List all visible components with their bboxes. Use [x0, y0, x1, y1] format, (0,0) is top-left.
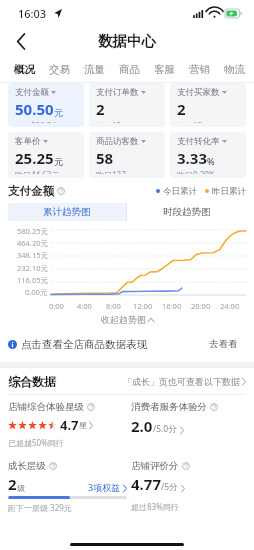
button[interactable]: 物流: [217, 56, 252, 82]
button[interactable]: 累计趋势图: [8, 203, 126, 221]
staticText: 商品访客数: [96, 136, 139, 147]
button[interactable]: 支付买家数: [170, 83, 246, 127]
staticText: 超过83%同行: [131, 501, 179, 512]
button[interactable]: 商品访客数: [89, 132, 165, 178]
staticText: 概况: [14, 63, 35, 76]
staticText: 元: [54, 156, 63, 167]
staticText: 级: [17, 483, 25, 493]
staticText: 流量: [84, 63, 105, 76]
staticText: %: [207, 155, 215, 167]
staticText: 昨日9.29%: [177, 169, 216, 174]
staticText: 3项权益: [88, 481, 121, 493]
staticText: 星: [79, 420, 87, 430]
staticText: 点击查看全店商品数据表现: [21, 338, 147, 351]
staticText: 「成长」页也可查看以下数据: [123, 376, 240, 387]
staticText: 客单价: [15, 136, 41, 147]
staticText: 时段趋势图: [163, 206, 211, 218]
staticText: /5.0分: [153, 423, 177, 435]
staticText: 348.15元: [17, 250, 48, 260]
staticText: 店铺评价分: [131, 460, 179, 472]
staticText: 昨日累计: [212, 186, 246, 197]
staticText: 50.50: [15, 99, 54, 119]
staticText: 2: [8, 474, 17, 494]
staticText: 昨日580.24元: [15, 120, 65, 123]
staticText: 支付订单数: [96, 87, 139, 98]
button[interactable]: 4.77: [131, 474, 185, 494]
staticText: 25.25: [15, 148, 54, 168]
staticText: 464.20元: [17, 238, 48, 248]
button[interactable]: 去看看: [201, 335, 246, 353]
staticText: 物流: [224, 63, 245, 76]
staticText: 8:00: [106, 301, 121, 311]
button[interactable]: 商品: [112, 56, 147, 82]
button[interactable]: 2: [8, 474, 127, 494]
staticText: 昨日137: [96, 169, 126, 174]
button[interactable]: 客服: [147, 56, 182, 82]
staticText: 昨日13: [96, 120, 122, 123]
staticText: 客服: [154, 63, 175, 76]
button[interactable]: 客单价: [8, 132, 84, 178]
staticText: 4:00: [77, 301, 92, 311]
staticText: 支付金额: [8, 184, 54, 198]
staticText: /5分: [161, 481, 178, 493]
staticText: 116.05元: [17, 275, 48, 285]
staticText: 去看看: [209, 338, 238, 350]
button[interactable]: 支付订单数: [89, 83, 165, 127]
button[interactable]: 流量: [77, 56, 112, 82]
staticText: 16:03: [18, 6, 47, 21]
staticText: 消费者服务体验分: [131, 401, 207, 413]
staticText: 昨日13: [177, 120, 203, 123]
staticText: 58: [96, 148, 114, 168]
staticText: 232.10元: [17, 263, 48, 273]
button[interactable]: 2.0: [131, 416, 184, 436]
button[interactable]: 支付金额: [8, 83, 84, 127]
staticText: 24:00: [220, 301, 240, 311]
staticText: 交易: [49, 63, 70, 76]
staticText: 2: [96, 99, 105, 119]
staticText: 支付转化率: [177, 136, 220, 147]
staticText: 商品: [119, 63, 140, 76]
button[interactable]: 4.7: [8, 416, 93, 434]
staticText: 2.0: [131, 416, 153, 436]
staticText: 20:00: [191, 301, 211, 311]
staticText: 12:00: [133, 301, 153, 311]
staticText: 距下一层级 329元: [8, 502, 72, 513]
staticText: 收起趋势图: [101, 314, 146, 325]
button[interactable]: 概况: [6, 56, 42, 82]
staticText: 已超越50%同行: [8, 437, 64, 448]
staticText: 店铺综合体验星级: [8, 401, 84, 413]
staticText: 0:00: [49, 301, 64, 311]
staticText: 3.33: [177, 148, 207, 168]
button[interactable]: 综合数据: [8, 368, 246, 394]
staticText: 支付买家数: [177, 87, 220, 98]
staticText: 营销: [189, 63, 210, 76]
staticText: 4.77: [131, 474, 161, 494]
staticText: 0.00元: [25, 287, 48, 297]
button[interactable]: 营销: [182, 56, 217, 82]
staticText: 元: [54, 107, 63, 118]
staticText: 累计趋势图: [43, 206, 91, 218]
button[interactable]: Back: [8, 28, 34, 54]
button[interactable]: 交易: [42, 56, 77, 82]
button[interactable]: 时段趋势图: [127, 203, 246, 221]
button[interactable]: 收起趋势图: [8, 311, 246, 327]
staticText: 580.25元: [17, 226, 48, 236]
staticText: 2: [177, 99, 186, 119]
staticText: 16:00: [162, 301, 182, 311]
staticText: 数据中心: [98, 32, 156, 50]
staticText: 4.7: [60, 416, 79, 434]
button[interactable]: 支付转化率: [170, 132, 246, 178]
staticText: 今日累计: [163, 186, 197, 197]
staticText: 支付金额: [15, 87, 49, 98]
staticText: 综合数据: [8, 374, 56, 389]
staticText: 成长层级: [8, 460, 46, 472]
staticText: 昨日44.63元: [15, 169, 60, 174]
